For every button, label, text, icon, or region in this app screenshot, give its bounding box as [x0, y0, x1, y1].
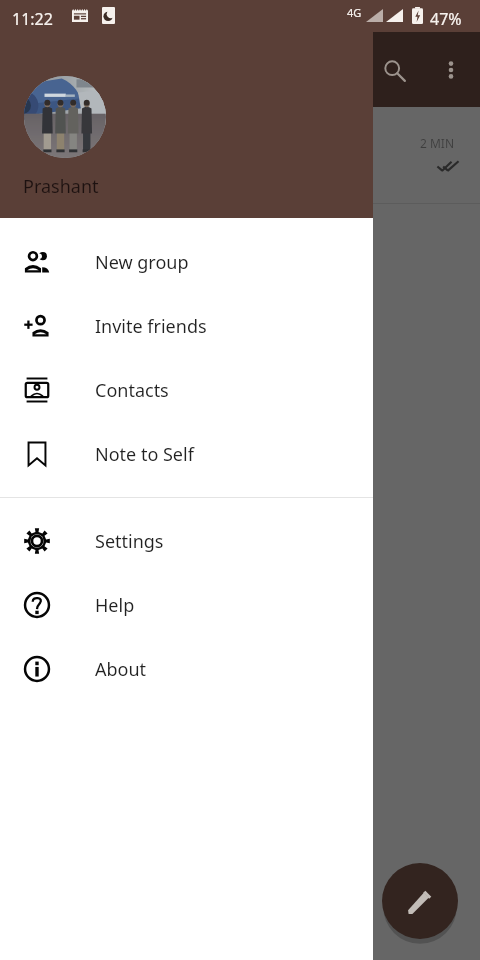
staticText: Help: [95, 593, 135, 618]
staticText: Contacts: [95, 378, 169, 403]
button[interactable]: Help: [0, 573, 373, 637]
staticText: Note to Self: [95, 442, 194, 467]
button[interactable]: More options: [432, 51, 470, 89]
button[interactable]: Note to Self: [0, 422, 373, 486]
button[interactable]: Invite friends: [0, 294, 373, 358]
staticText: 2 MIN: [420, 135, 455, 151]
staticText: Prashant: [23, 174, 99, 199]
button[interactable]: Compose new message: [382, 863, 458, 939]
staticText: Invite friends: [95, 314, 207, 339]
staticText: 4G: [347, 5, 362, 20]
button[interactable]: Search: [372, 48, 416, 92]
button[interactable]: Contacts: [0, 358, 373, 422]
button[interactable]: Settings: [0, 509, 373, 573]
other: Profile photo: [24, 76, 106, 158]
button[interactable]: New group: [0, 230, 373, 294]
staticText: About: [95, 657, 147, 682]
staticText: New group: [95, 250, 189, 275]
button[interactable]: Profile photo: [0, 0, 373, 218]
button[interactable]: About: [0, 637, 373, 701]
staticText: Settings: [95, 529, 164, 554]
staticText: 47%: [430, 8, 462, 30]
staticText: 11:22: [12, 8, 53, 30]
